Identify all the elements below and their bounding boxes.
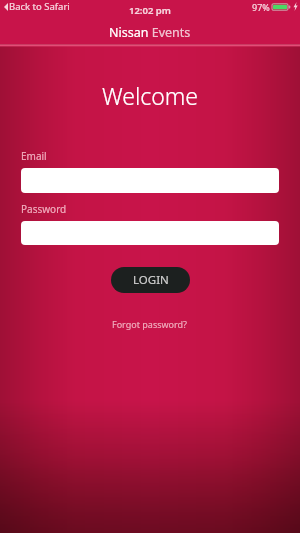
staticText: Welcome bbox=[0, 80, 300, 111]
button[interactable]: Password input bbox=[21, 221, 279, 245]
staticText: Back to Safari bbox=[9, 0, 70, 13]
staticText: LOGIN bbox=[133, 272, 169, 288]
staticText: Nissan Events bbox=[109, 24, 191, 41]
other: Back bbox=[4, 3, 8, 11]
staticText: Email bbox=[21, 149, 47, 163]
button[interactable]: Email input bbox=[21, 168, 279, 193]
staticText: Forgot password? bbox=[112, 318, 188, 330]
staticText: Password bbox=[21, 202, 67, 216]
staticText: 12:02 pm bbox=[129, 4, 171, 17]
button[interactable]: Forgot password? bbox=[106, 315, 194, 333]
button[interactable]: LOGIN bbox=[111, 267, 190, 293]
staticText: 97% bbox=[252, 1, 270, 13]
